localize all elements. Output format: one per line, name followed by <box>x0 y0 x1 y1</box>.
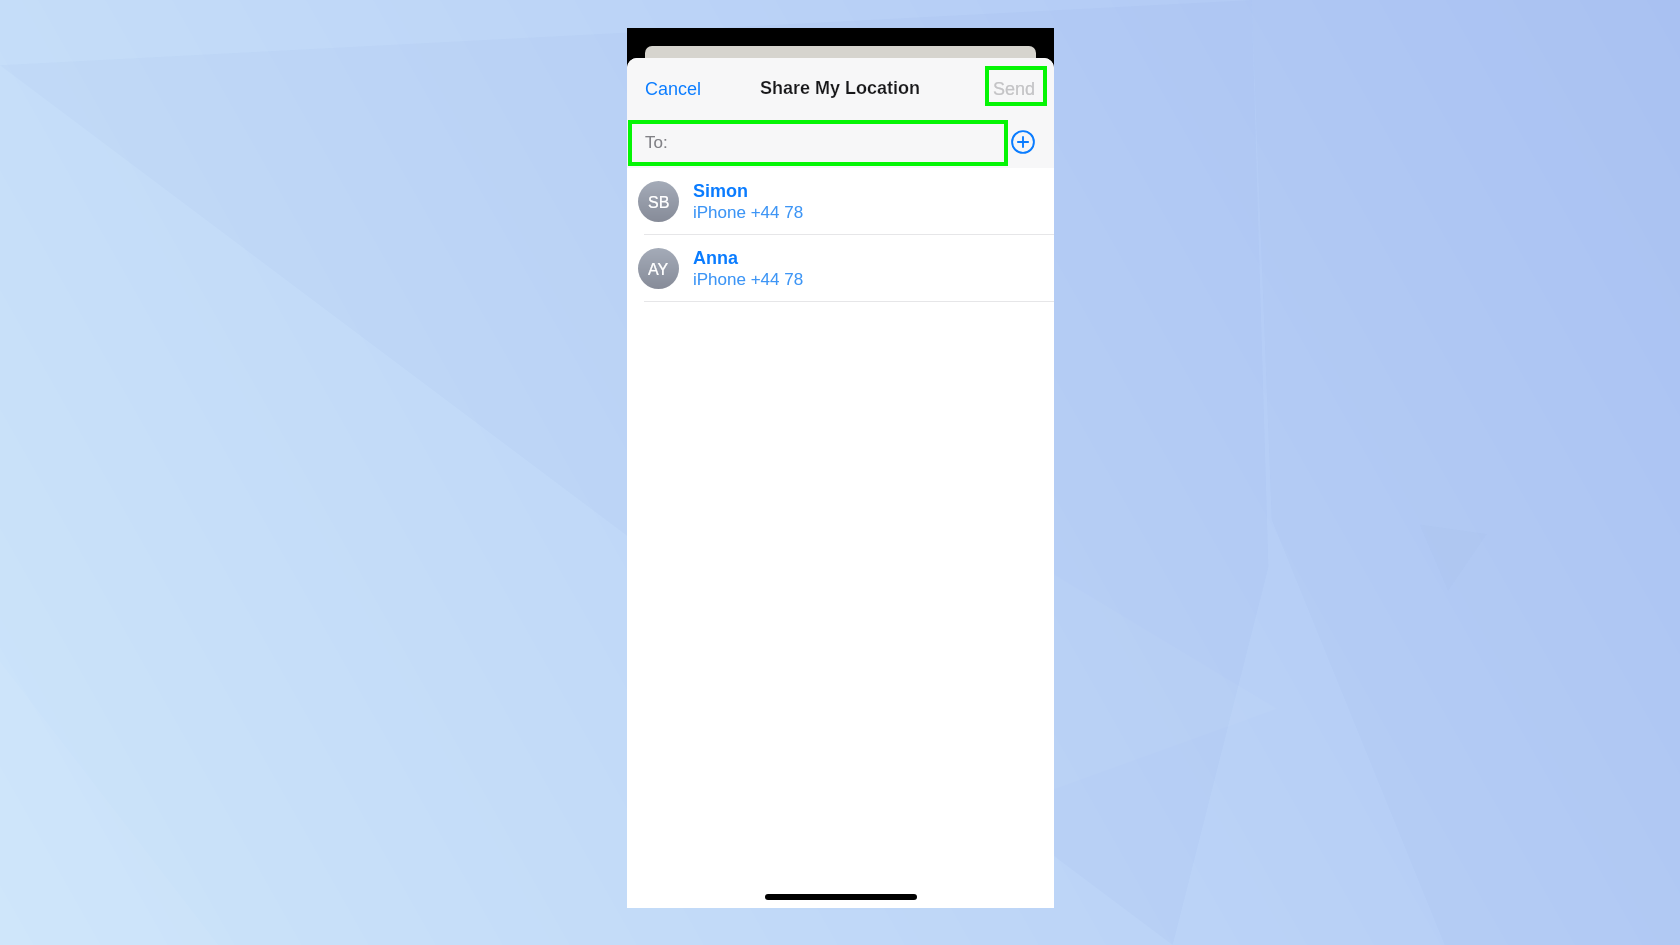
staticText: SB <box>648 194 670 212</box>
staticText: To: <box>645 133 668 152</box>
button[interactable]: Send <box>985 72 1044 106</box>
staticText: Simon <box>693 181 749 201</box>
button[interactable]: SB <box>627 168 1054 234</box>
button[interactable]: AY <box>627 235 1054 301</box>
staticText: Share My Location <box>760 78 921 98</box>
staticText: iPhone +44 78 <box>693 203 804 222</box>
staticText: iPhone +44 78 <box>693 270 804 289</box>
staticText: AY <box>648 261 669 279</box>
button[interactable]: To: <box>627 119 1008 168</box>
button[interactable]: Cancel <box>636 72 711 106</box>
staticText: Send <box>993 79 1036 99</box>
button[interactable]: Add recipient <box>1011 130 1035 154</box>
staticText: Cancel <box>645 79 702 99</box>
staticText: Anna <box>693 248 738 268</box>
